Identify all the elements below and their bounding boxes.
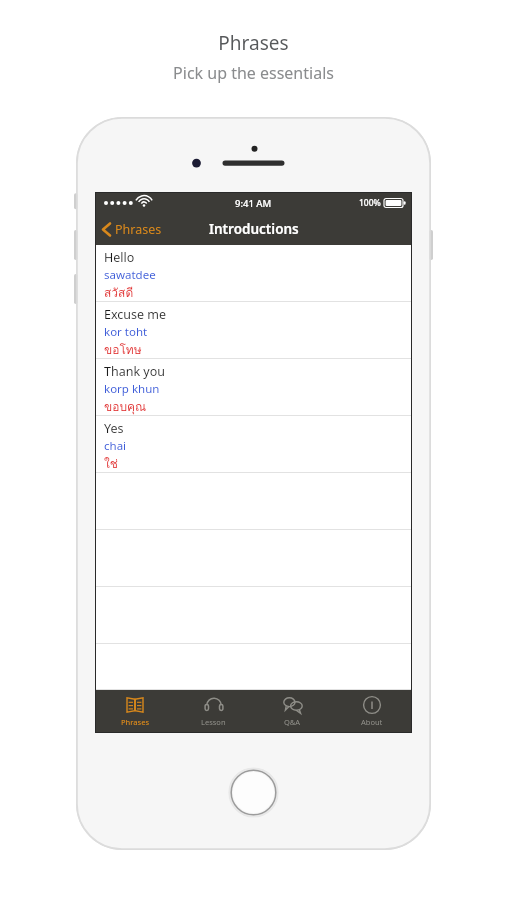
staticText: สวัสดี [104, 283, 134, 302]
staticText: sawatdee [104, 267, 156, 283]
staticText: Phrases [115, 221, 162, 238]
button[interactable]: Hello [96, 245, 411, 302]
staticText: ใช่ [104, 454, 119, 473]
button[interactable]: Excuse me [96, 302, 411, 359]
staticText: About [361, 717, 383, 727]
button[interactable]: Lesson [174, 690, 253, 732]
staticText: korp khun [104, 381, 160, 397]
staticText: ขอบคุณ [104, 397, 147, 416]
staticText: Introductions [209, 220, 299, 238]
staticText: Phrases [218, 30, 289, 56]
button[interactable]: Thank you [96, 359, 411, 416]
button[interactable]: Yes [96, 416, 411, 473]
staticText: 100% [359, 197, 381, 209]
staticText: ขอโทษ [104, 340, 142, 359]
button[interactable]: Phrases [96, 217, 170, 242]
button[interactable]: About [332, 690, 411, 732]
staticText: chai [104, 438, 127, 454]
button[interactable]: Q&A [253, 690, 332, 732]
staticText: Lesson [201, 717, 226, 727]
staticText: Excuse me [104, 306, 167, 323]
staticText: kor toht [104, 324, 148, 340]
staticText: 9:41 AM [235, 197, 272, 210]
staticText: Q&A [284, 717, 301, 727]
staticText: Thank you [104, 363, 166, 380]
staticText: Yes [104, 420, 124, 437]
button[interactable]: Phrases [96, 690, 174, 732]
staticText: Pick up the essentials [173, 62, 334, 84]
staticText: Phrases [121, 717, 150, 727]
staticText: Hello [104, 249, 135, 266]
